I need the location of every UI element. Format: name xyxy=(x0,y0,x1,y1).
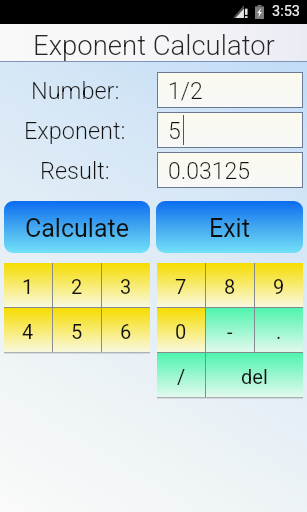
button[interactable]: 0.03125 xyxy=(158,153,302,187)
staticText: Exponent Calculator xyxy=(33,29,275,61)
button[interactable]: 8 xyxy=(206,263,254,307)
button[interactable]: 5 xyxy=(53,308,101,352)
staticText: 4 xyxy=(22,320,34,343)
staticText: Calculate xyxy=(25,214,129,243)
staticText: del xyxy=(241,365,268,388)
other: Signal strength xyxy=(233,5,248,18)
button[interactable]: del xyxy=(206,353,303,397)
button[interactable]: 1 xyxy=(4,263,52,307)
button[interactable]: 0 xyxy=(157,308,205,352)
staticText: 5 xyxy=(168,118,181,145)
staticText: - xyxy=(227,320,233,343)
staticText: Result: xyxy=(40,157,110,185)
staticText: 7 xyxy=(175,275,187,298)
staticText: 0.03125 xyxy=(168,158,251,185)
button[interactable]: 9 xyxy=(255,263,303,307)
button[interactable]: 7 xyxy=(157,263,205,307)
staticText: 5 xyxy=(71,320,83,343)
staticText: 1/2 xyxy=(168,78,203,105)
staticText: / xyxy=(177,365,186,388)
staticText: 8 xyxy=(224,275,236,298)
button[interactable]: 4 xyxy=(4,308,52,352)
button[interactable]: . xyxy=(255,308,303,352)
staticText: 0 xyxy=(175,320,187,343)
staticText: 2 xyxy=(71,275,83,298)
other: Battery charging xyxy=(255,5,264,19)
staticText: 9 xyxy=(273,275,285,298)
button[interactable]: Exit xyxy=(156,201,303,253)
staticText: 1 xyxy=(22,275,34,298)
staticText: 3 xyxy=(120,275,132,298)
staticText: Exit xyxy=(209,214,250,243)
button[interactable]: 1/2 xyxy=(158,73,302,107)
button[interactable]: 3 xyxy=(102,263,150,307)
staticText: . xyxy=(276,320,282,343)
staticText: Number: xyxy=(31,77,120,105)
button[interactable]: / xyxy=(157,353,205,397)
button[interactable]: 2 xyxy=(53,263,101,307)
button[interactable]: - xyxy=(206,308,254,352)
staticText: 6 xyxy=(120,320,132,343)
staticText: 3:53 xyxy=(272,3,300,20)
staticText: Exponent: xyxy=(24,117,126,145)
button[interactable]: Calculate xyxy=(4,201,150,253)
button[interactable]: 5 xyxy=(158,113,302,147)
button[interactable]: 6 xyxy=(102,308,150,352)
